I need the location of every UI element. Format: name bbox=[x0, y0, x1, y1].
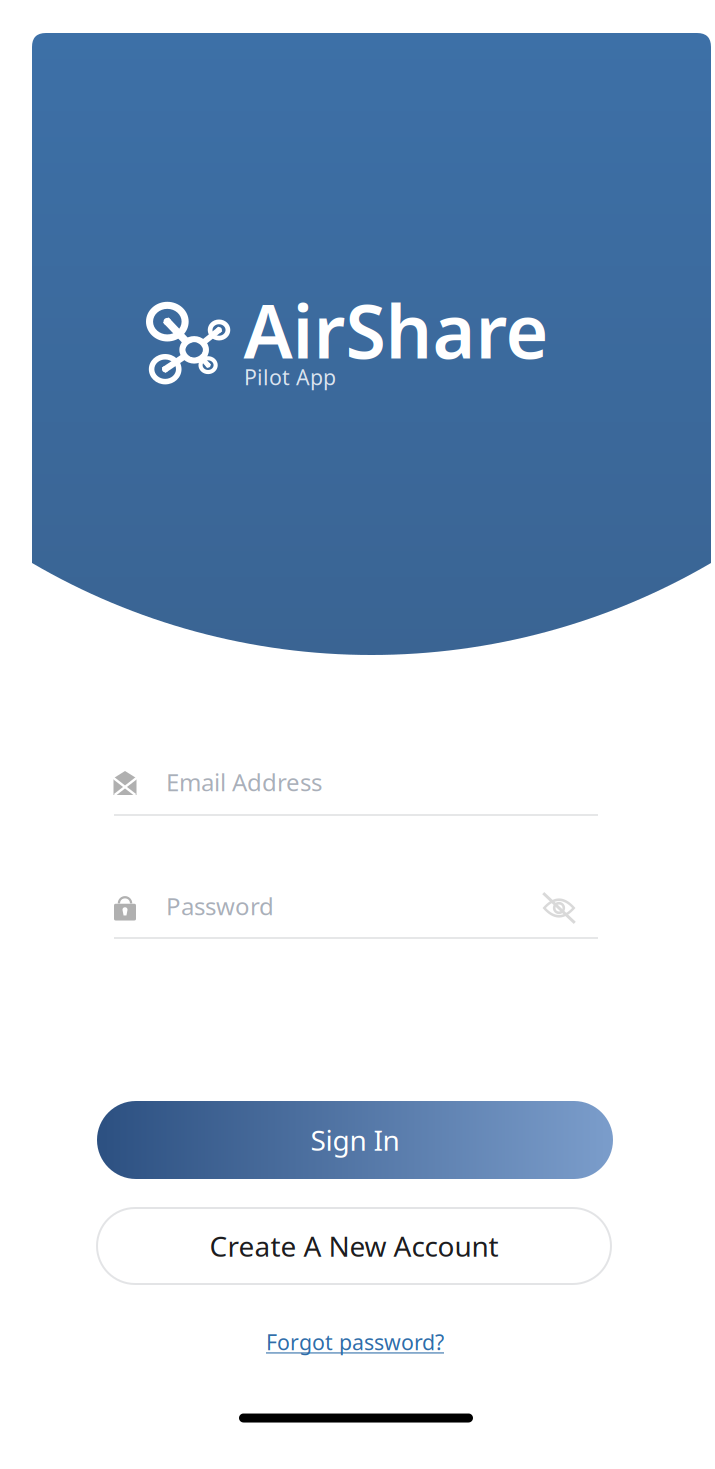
staticText: Email Address bbox=[166, 766, 322, 798]
staticText: Forgot password? bbox=[266, 1328, 444, 1356]
button[interactable]: Sign In bbox=[97, 1101, 613, 1179]
button[interactable]: Show password bbox=[535, 886, 582, 929]
staticText: AirShare bbox=[243, 281, 548, 379]
button[interactable]: Create A New Account bbox=[97, 1208, 611, 1284]
staticText: Sign In bbox=[310, 1121, 399, 1159]
button[interactable]: Forgot password? bbox=[235, 1322, 475, 1362]
staticText: Password bbox=[166, 890, 274, 922]
staticText: Pilot App bbox=[244, 363, 336, 391]
staticText: Create A New Account bbox=[209, 1227, 498, 1265]
